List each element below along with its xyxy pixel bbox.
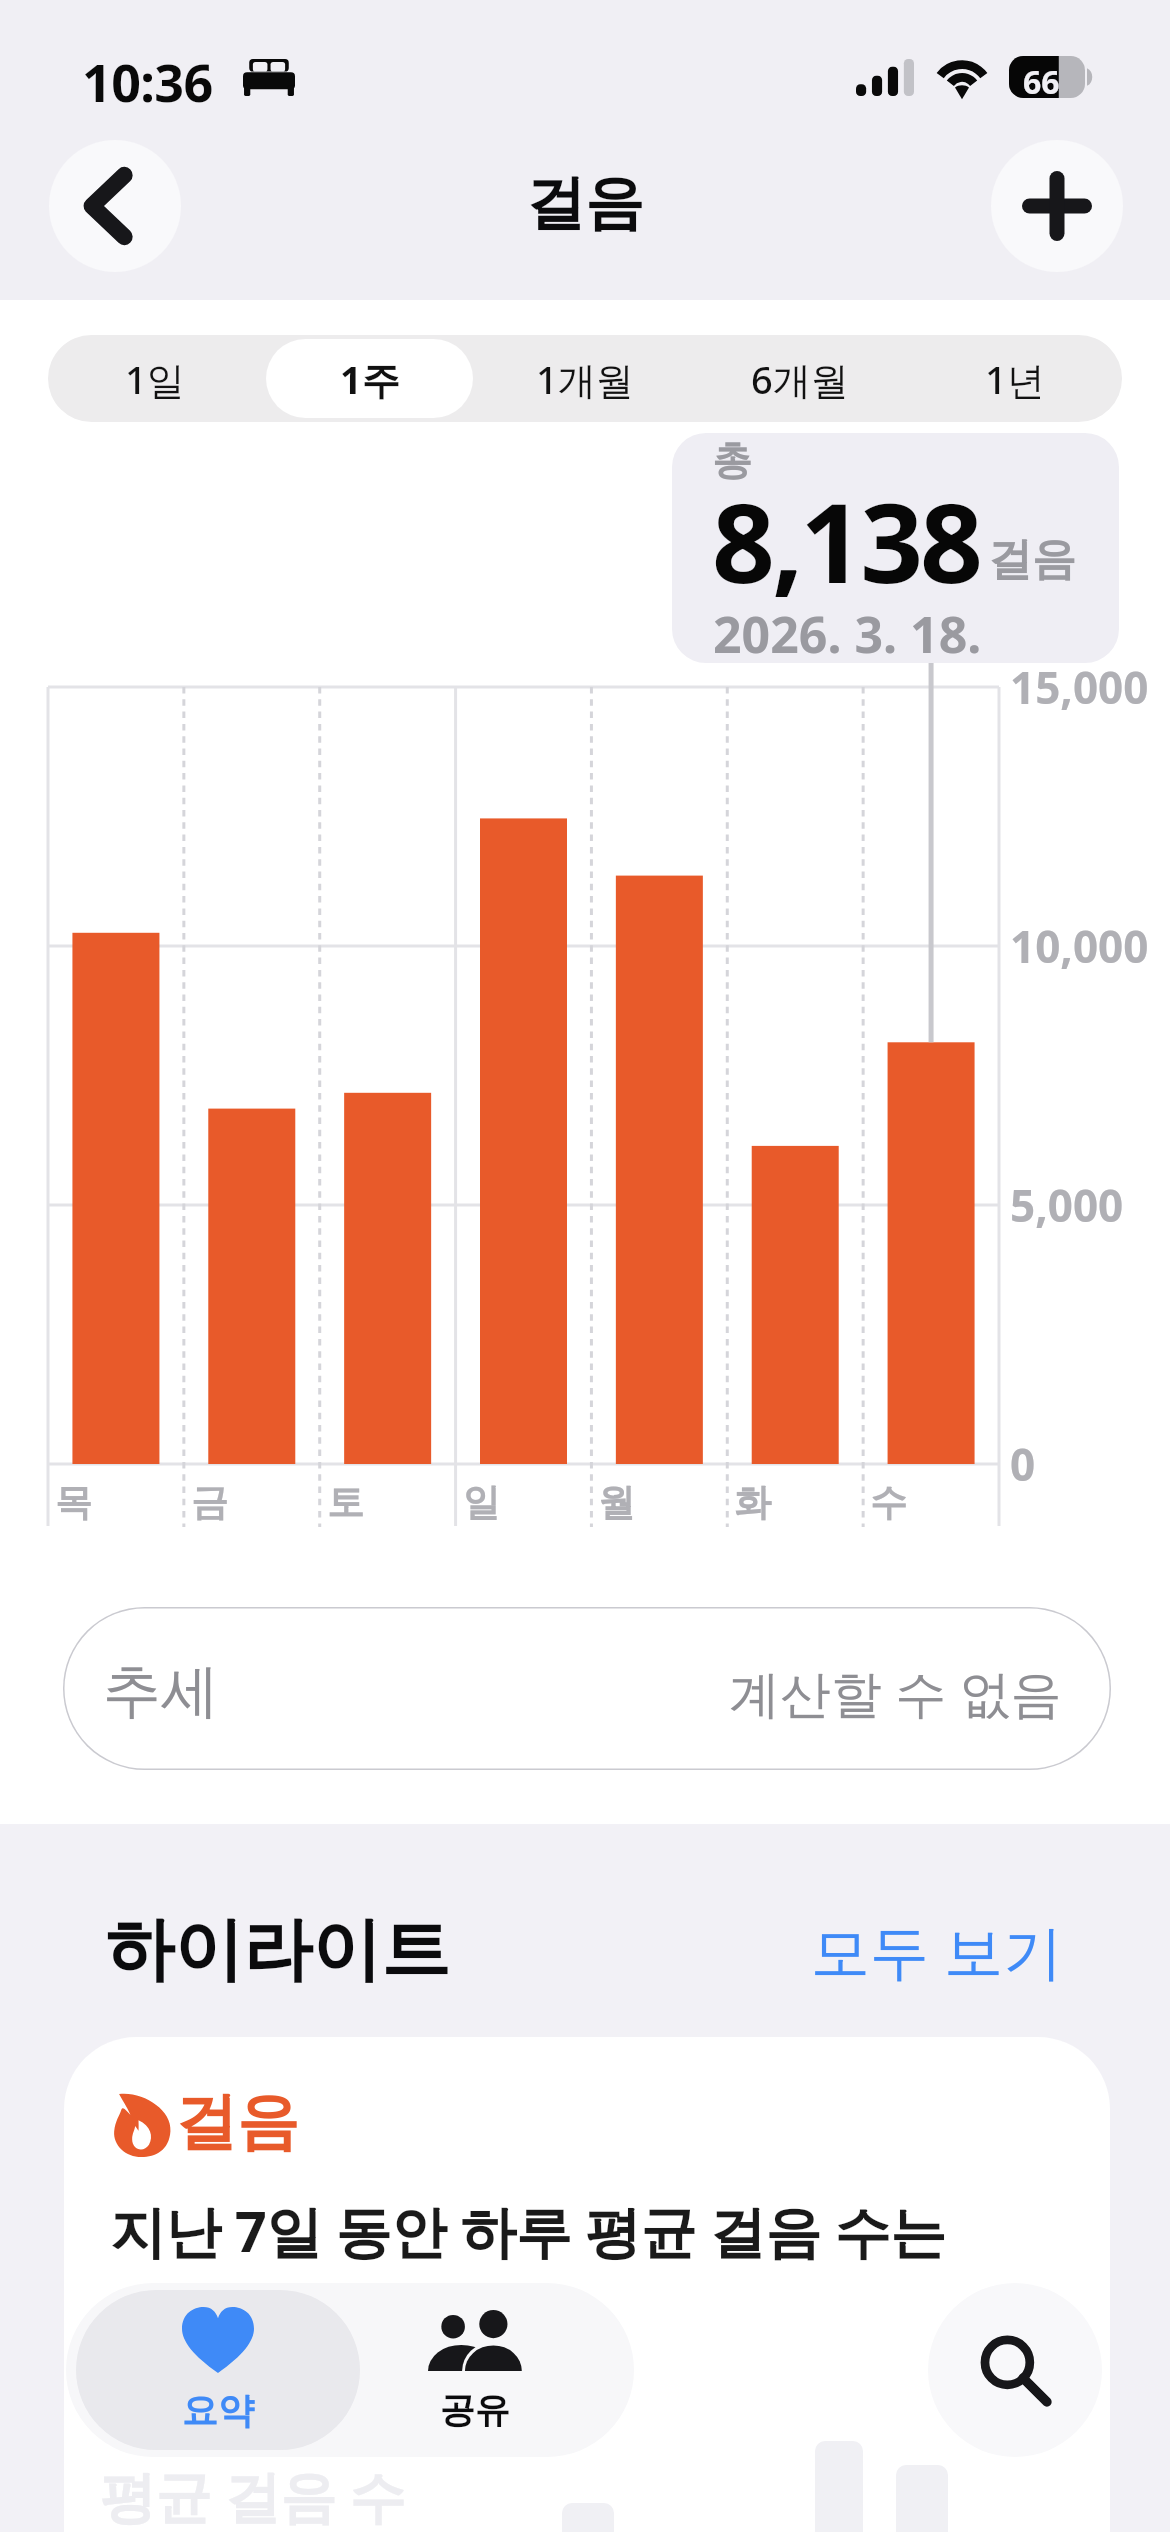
staticText: 1일 [125, 353, 185, 405]
button[interactable]: Search [928, 2283, 1102, 2457]
staticText: 10,000 [1010, 916, 1149, 976]
staticText: 월 [598, 1479, 635, 1526]
staticText: 금 [191, 1479, 228, 1526]
staticText: 목 [55, 1479, 92, 1526]
staticText: 공유 [440, 2388, 510, 2432]
button[interactable]: 추세 [63, 1607, 1111, 1770]
staticText: 하이라이트 [105, 1907, 450, 1994]
staticText: 1년 [985, 353, 1045, 405]
staticText: 66 [1023, 60, 1060, 102]
button[interactable]: 모두 보기 [811, 1910, 1063, 1991]
button[interactable]: 1개월 [481, 339, 688, 418]
staticText: 요약 [182, 2388, 254, 2433]
staticText: 수 [870, 1479, 907, 1526]
staticText: 화 [734, 1479, 771, 1526]
button[interactable]: 1년 [911, 339, 1118, 418]
staticText: 걸음 [175, 2083, 299, 2161]
staticText: 일 [463, 1479, 500, 1526]
staticText: 2026. 3. 18. [713, 600, 982, 663]
staticText: 걸음 [988, 532, 1076, 587]
staticText: 걸음 [526, 166, 644, 240]
staticText: 추세 [103, 1655, 219, 1728]
staticText: 15,000 [1010, 657, 1149, 717]
button[interactable]: Back [49, 140, 181, 272]
staticText: 1주 [340, 353, 400, 405]
button[interactable]: 공유 [360, 2283, 634, 2457]
button[interactable]: 6개월 [696, 339, 903, 418]
staticText: 모두 보기 [811, 1910, 1063, 1991]
button[interactable]: 걸음 [64, 2037, 1110, 2532]
staticText: 6개월 [751, 353, 849, 405]
staticText: 8,138 [712, 465, 981, 615]
button[interactable]: 1주 [266, 339, 473, 418]
staticText: 0 [1010, 1434, 1036, 1494]
staticText: 지난 7일 동안 하루 평균 걸음 수는 [110, 2192, 946, 2268]
button[interactable]: Add [991, 140, 1123, 272]
staticText: 평균 걸음 수 [100, 2457, 405, 2532]
staticText: 1개월 [536, 353, 634, 405]
staticText: 총 [712, 435, 752, 485]
button[interactable]: 1일 [52, 339, 258, 418]
button[interactable]: 요약 [76, 2290, 360, 2450]
staticText: 10:36 [82, 46, 213, 117]
staticText: 5,000 [1010, 1175, 1124, 1235]
staticText: 계산할 수 없음 [729, 1657, 1062, 1727]
staticText: 토 [327, 1479, 364, 1526]
